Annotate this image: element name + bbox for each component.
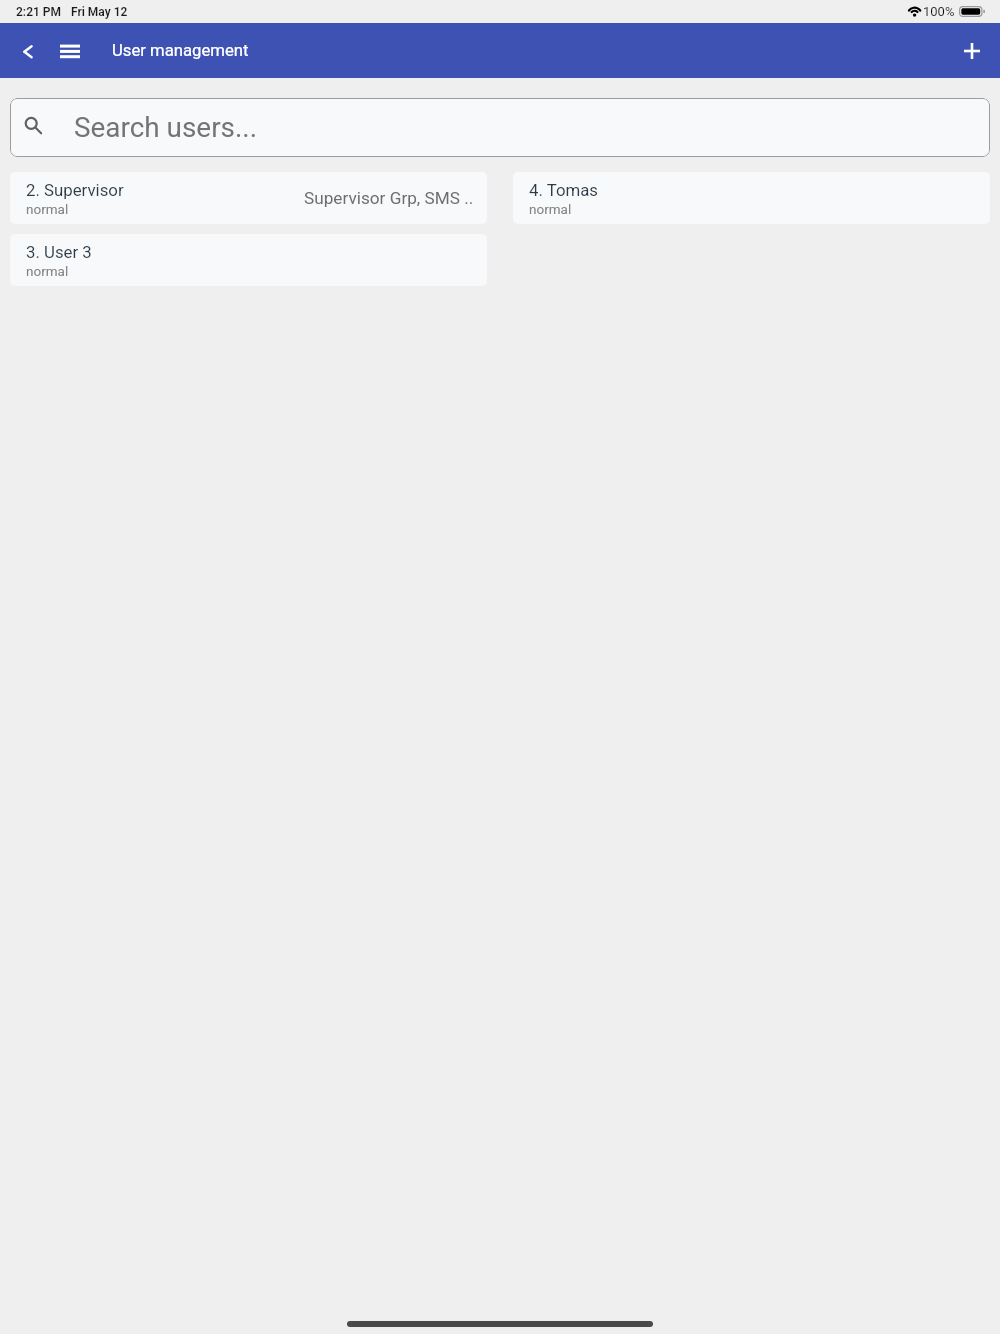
staticText: normal bbox=[529, 201, 572, 217]
button[interactable]: Search users... bbox=[10, 98, 990, 157]
staticText: Fri May 12 bbox=[71, 5, 128, 19]
button[interactable]: 3. User 3 bbox=[10, 234, 487, 286]
staticText: normal bbox=[26, 263, 69, 279]
button[interactable]: Menu bbox=[49, 23, 90, 78]
button[interactable]: Add user bbox=[944, 23, 999, 78]
staticText: 2. Supervisor bbox=[26, 180, 124, 200]
staticText: 2:21 PM bbox=[16, 5, 62, 19]
button[interactable]: 2. Supervisor bbox=[10, 172, 487, 224]
staticText: 4. Tomas bbox=[529, 180, 599, 200]
staticText: Supervisor Grp, SMS .. bbox=[304, 188, 474, 208]
button[interactable]: Back bbox=[8, 23, 48, 78]
staticText: 3. User 3 bbox=[26, 242, 92, 262]
staticText: 100% bbox=[923, 4, 955, 19]
staticText: Search users... bbox=[74, 111, 258, 144]
button[interactable]: 4. Tomas bbox=[513, 172, 990, 224]
staticText: normal bbox=[26, 201, 69, 217]
staticText: User management bbox=[112, 41, 249, 61]
